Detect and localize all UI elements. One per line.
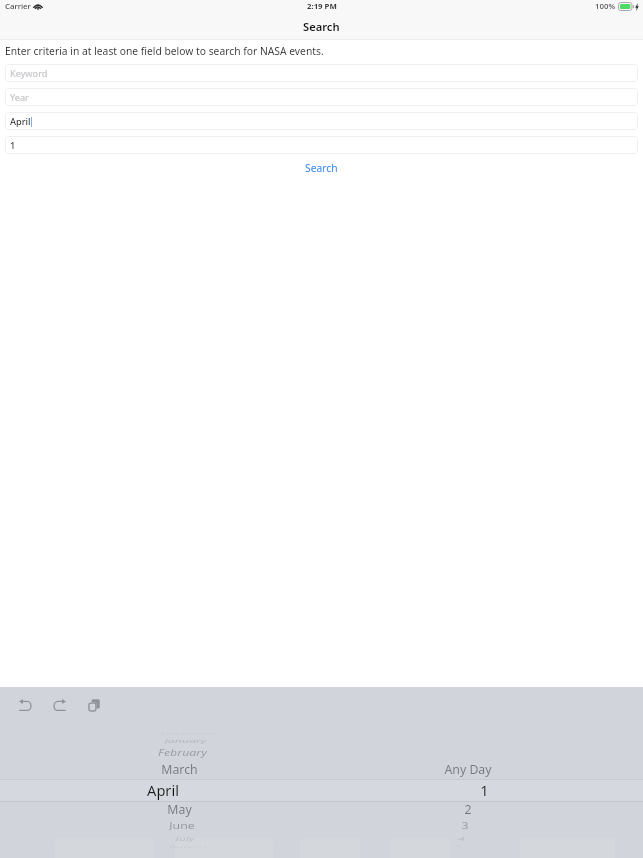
button[interactable]: 1: [5, 136, 638, 154]
staticText: 3: [461, 819, 469, 832]
staticText: Carrier: [5, 1, 31, 12]
button[interactable]: Search: [295, 158, 348, 178]
button[interactable]: April: [5, 112, 638, 130]
button[interactable]: Undo: [13, 693, 37, 717]
staticText: 2:19 PM: [307, 1, 337, 12]
staticText: Keyword: [10, 67, 48, 80]
button[interactable]: Year: [5, 88, 638, 106]
staticText: Enter criteria in at least one field bel…: [5, 44, 324, 58]
staticText: January: [164, 737, 207, 744]
button[interactable]: Paste: [82, 693, 106, 717]
button[interactable]: Redo: [47, 693, 71, 717]
staticText: August: [169, 844, 207, 849]
staticText: 1: [480, 780, 489, 800]
staticText: Year: [10, 91, 29, 104]
staticText: July: [175, 834, 195, 843]
staticText: 100%: [595, 1, 616, 12]
staticText: Any Day: [444, 761, 492, 778]
button[interactable]: Keyword: [5, 64, 638, 82]
staticText: February: [158, 746, 207, 758]
staticText: May: [167, 801, 192, 818]
staticText: Search: [303, 19, 340, 34]
staticText: April: [10, 115, 31, 128]
staticText: 4: [458, 834, 465, 843]
staticText: 2: [464, 801, 472, 818]
staticText: March: [161, 761, 198, 778]
staticText: June: [169, 819, 195, 832]
staticText: Search: [305, 161, 338, 175]
staticText: April: [147, 780, 179, 800]
staticText: 1: [10, 139, 16, 152]
